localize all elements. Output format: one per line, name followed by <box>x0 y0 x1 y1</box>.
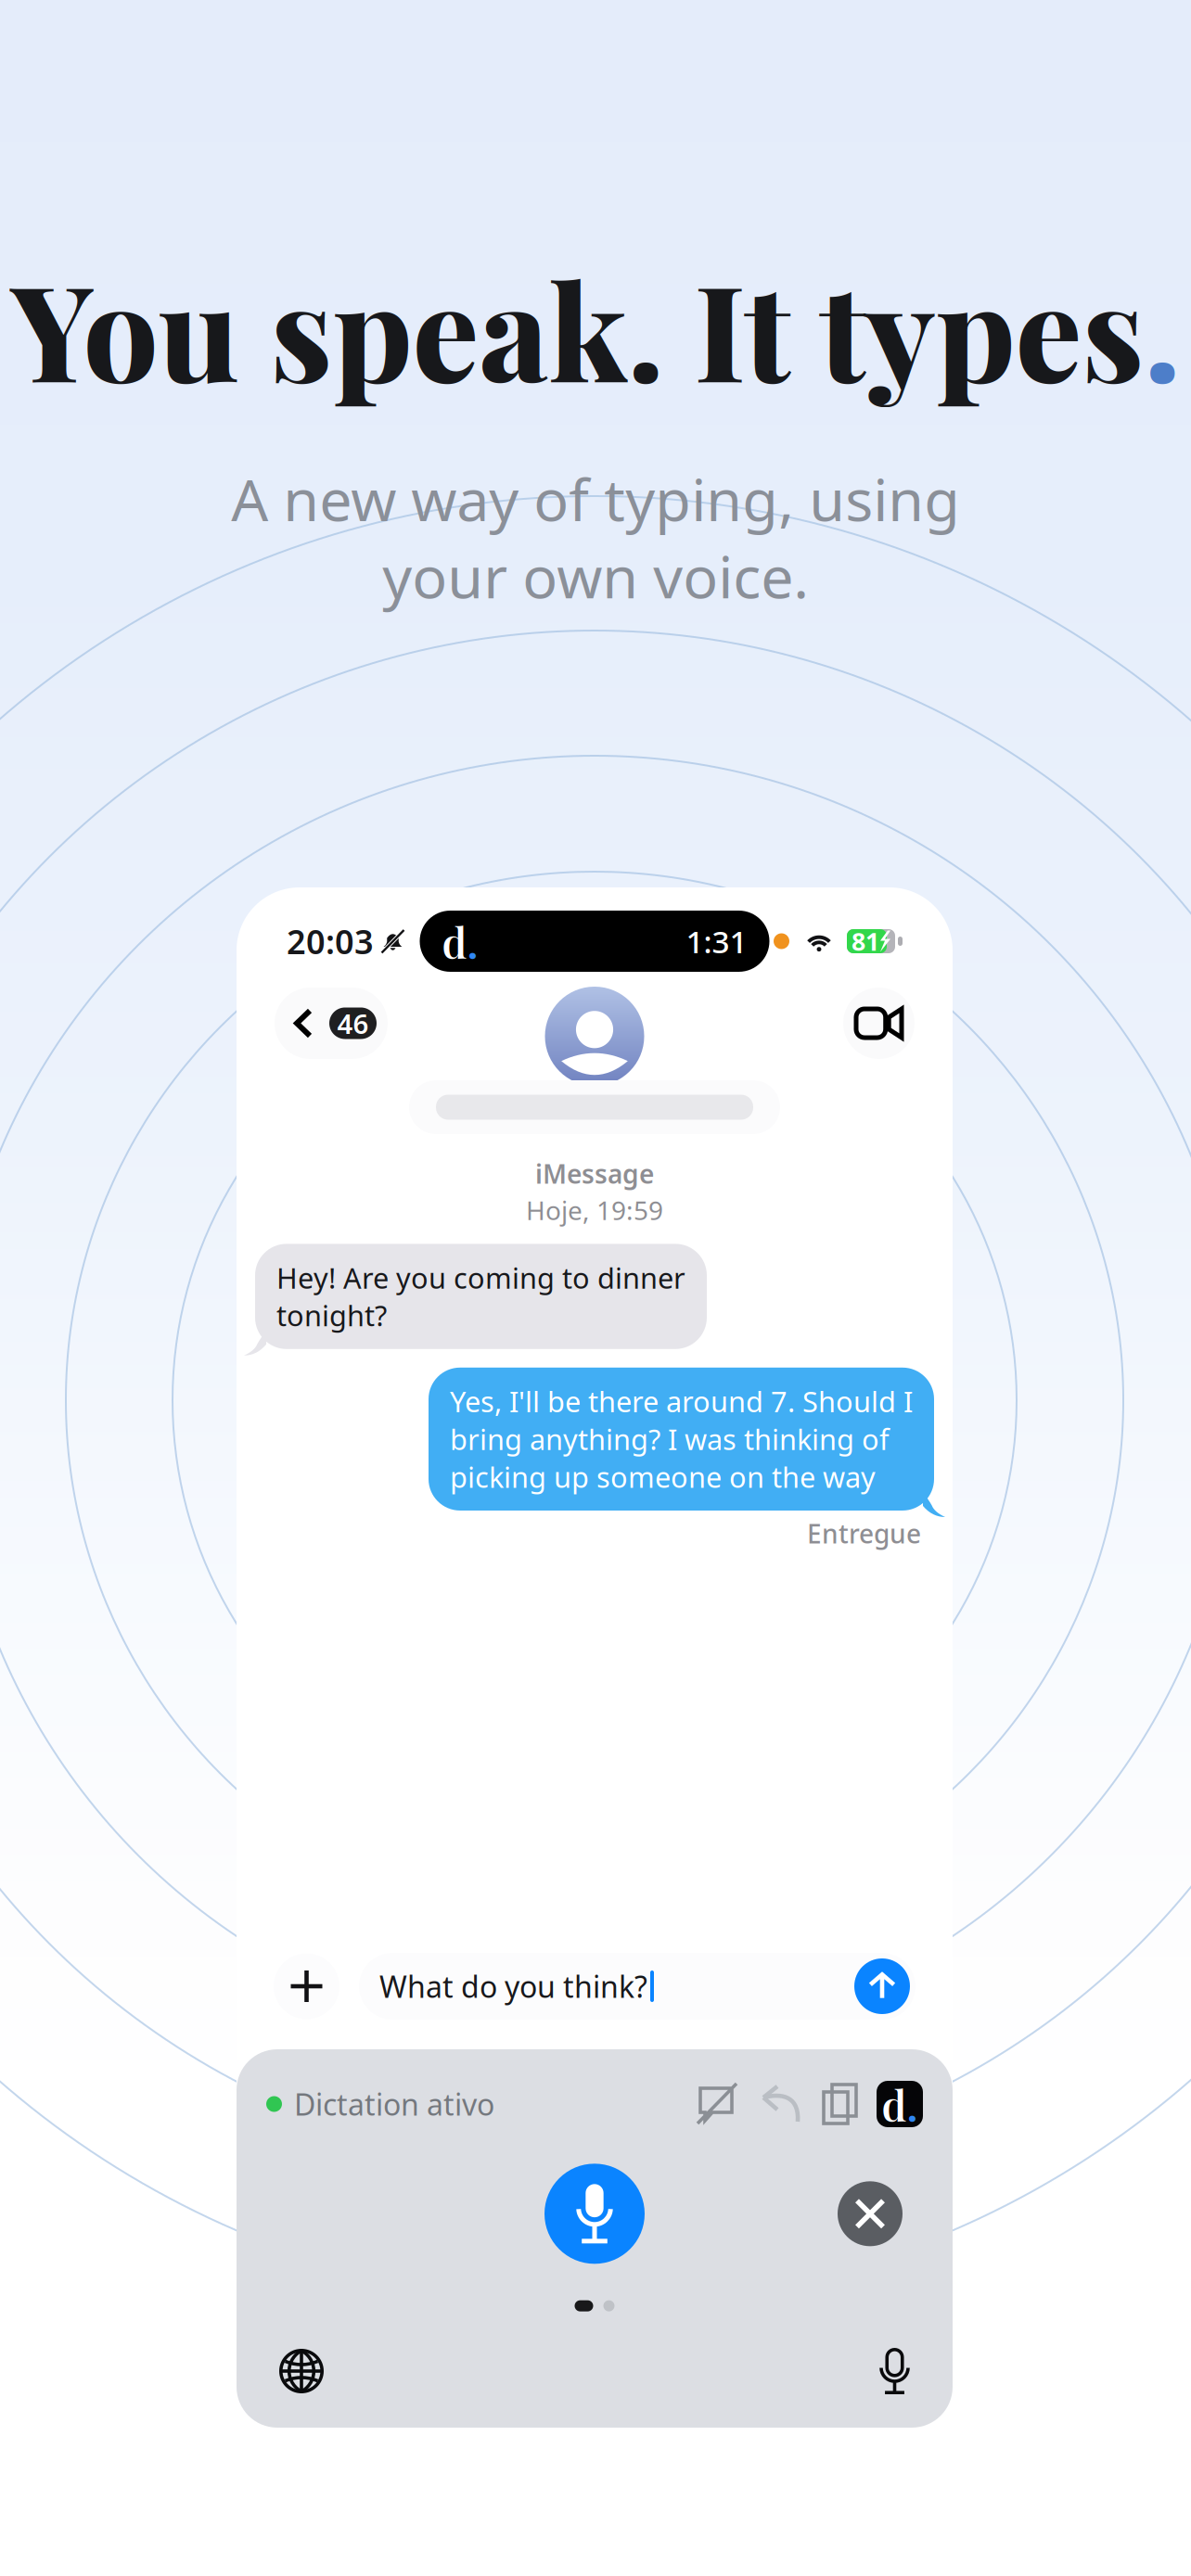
staticText: Dictation ativo <box>294 2084 494 2124</box>
button[interactable]: 46 <box>275 988 388 1059</box>
staticText: A new way of typing, using your own voic… <box>231 460 960 614</box>
staticText: d <box>882 2076 907 2132</box>
staticText: 20:03 <box>287 919 374 963</box>
button[interactable]: Undo <box>759 2085 801 2123</box>
button[interactable]: Dictation <box>879 2348 910 2394</box>
staticText: d <box>442 913 467 969</box>
button[interactable]: Mute dictation <box>698 2084 736 2124</box>
staticText: iMessage <box>535 1156 654 1191</box>
staticText: Yes, I'll be there around 7. Should I br… <box>450 1382 913 1496</box>
button[interactable]: Copy <box>822 2083 858 2125</box>
button[interactable]: FaceTime <box>843 988 915 1059</box>
staticText: Hoje, 19:59 <box>526 1193 663 1227</box>
button[interactable]: Add attachment <box>274 1953 339 2019</box>
button[interactable]: Start dictation <box>544 2164 645 2264</box>
staticText: 81 <box>852 925 879 958</box>
staticText: Entregue <box>807 1516 921 1551</box>
button[interactable]: Change keyboard <box>279 2349 324 2393</box>
button[interactable]: Send <box>854 1958 910 2014</box>
staticText: 46 <box>337 1005 369 1041</box>
staticText: . <box>907 2076 918 2132</box>
staticText: You speak. It types <box>11 239 1144 416</box>
staticText: . <box>1144 239 1180 416</box>
staticText: Hey! Are you coming to dinner tonight? <box>276 1259 685 1334</box>
button[interactable]: Close dictation <box>838 2181 903 2246</box>
button[interactable]: Dictation app <box>877 2081 923 2127</box>
staticText: 1:31 <box>686 921 747 962</box>
staticText: What do you think? <box>379 1967 647 2006</box>
staticText: . <box>467 913 478 969</box>
